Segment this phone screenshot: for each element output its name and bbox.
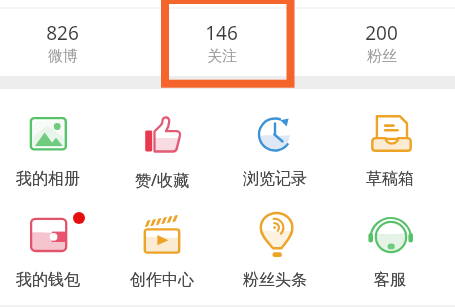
button[interactable]: 826 — [6, 0, 118, 76]
button[interactable]: 草稿箱 — [335, 112, 445, 202]
staticText: 我的相册 — [16, 169, 80, 189]
staticText: 粉丝头条 — [243, 270, 307, 290]
staticText: 创作中心 — [130, 270, 194, 290]
staticText: 浏览记录 — [243, 169, 307, 189]
staticText: 关注 — [207, 47, 237, 66]
staticText: 粉丝 — [367, 47, 397, 66]
staticText: 粉丝头条 — [243, 270, 307, 290]
staticText: 826 — [46, 20, 79, 46]
button[interactable]: 146 — [165, 0, 277, 76]
staticText: 赞/收藏 — [135, 169, 189, 191]
staticText: 草稿箱 — [366, 169, 414, 189]
staticText: 客服 — [374, 270, 406, 290]
staticText: 200 — [365, 20, 398, 46]
button[interactable]: 我的相册 — [0, 112, 103, 202]
staticText: 赞/收藏 — [135, 169, 189, 191]
button[interactable]: 粉丝头条 — [220, 213, 330, 303]
staticText: 浏览记录 — [243, 169, 307, 189]
staticText: 草稿箱 — [366, 169, 414, 189]
button[interactable]: 浏览记录 — [220, 112, 330, 202]
staticText: 我的相册 — [16, 169, 80, 189]
staticText: 客服 — [374, 270, 406, 290]
button[interactable]: 200 — [325, 0, 437, 76]
staticText: 创作中心 — [130, 270, 194, 290]
staticText: 我的钱包 — [16, 270, 80, 290]
button[interactable]: 客服 — [335, 213, 445, 303]
staticText: 我的钱包 — [16, 270, 80, 290]
staticText: 微博 — [48, 47, 78, 66]
staticText: 146 — [205, 20, 238, 46]
button[interactable]: 赞/收藏 — [107, 112, 217, 202]
button[interactable]: 我的钱包 — [0, 213, 103, 303]
button[interactable]: 创作中心 — [107, 213, 217, 303]
